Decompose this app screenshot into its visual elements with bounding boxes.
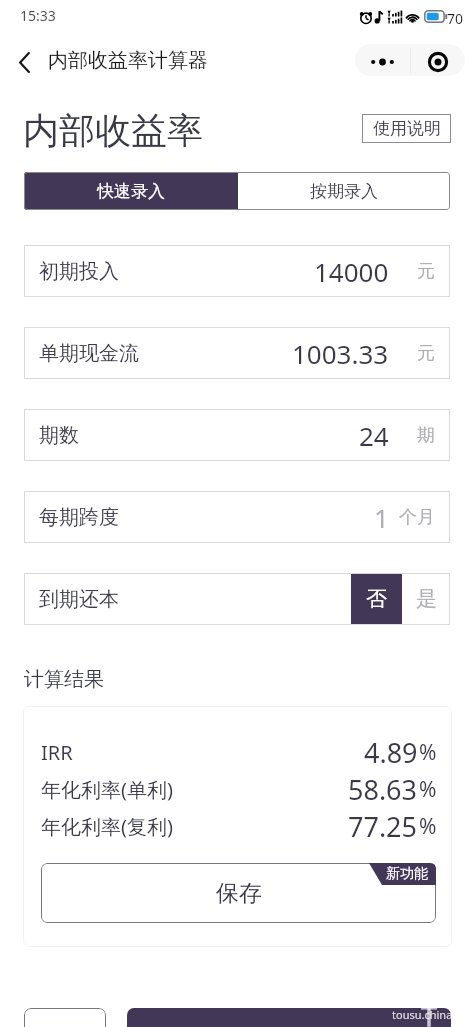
staticText: 元 (417, 260, 435, 283)
staticText: 元 (417, 342, 435, 365)
button[interactable]: 开始计算 (127, 1008, 451, 1027)
button[interactable]: 是 (402, 574, 450, 624)
staticText: 快速录入 (97, 181, 165, 202)
staticText: 1003.33 (292, 336, 389, 371)
button[interactable]: 功能菜单 (411, 44, 465, 76)
staticText: 70 (447, 9, 464, 28)
staticText: 77.25 (348, 808, 418, 844)
button[interactable]: 快速录入 (24, 172, 238, 210)
staticText: % (419, 775, 437, 804)
staticText: 年化利率(复利) (41, 813, 173, 840)
staticText: 年化利率(单利) (41, 776, 173, 803)
staticText: 期 (417, 424, 435, 447)
staticText: tousu.china.com (392, 1007, 474, 1022)
staticText: 单期现金流 (39, 341, 139, 366)
button[interactable]: 每期跨度 (24, 491, 450, 543)
staticText: % (419, 738, 437, 767)
button[interactable]: 保存 (41, 863, 436, 923)
staticText: 1 (374, 500, 389, 535)
staticText: 内部收益率 (23, 108, 203, 153)
staticText: 到期还本 (39, 587, 119, 612)
staticText: 24 (359, 418, 389, 453)
staticText: % (419, 812, 437, 841)
staticText: 期数 (39, 423, 79, 448)
staticText: 58.63 (348, 771, 418, 807)
staticText: 15:33 (20, 6, 56, 25)
button[interactable]: 期数 (24, 409, 450, 461)
staticText: 是 (416, 586, 437, 612)
button[interactable]: 更多 (355, 44, 410, 76)
staticText: 4.89 (364, 734, 418, 770)
button[interactable]: 重置 (24, 1008, 106, 1027)
button[interactable]: 返回 (4, 40, 44, 80)
staticText: 否 (366, 586, 387, 612)
staticText: 每期跨度 (39, 505, 119, 530)
staticText: IRR (41, 739, 73, 766)
staticText: 使用说明 (373, 118, 441, 139)
staticText: 个月 (399, 506, 435, 529)
staticText: 新功能 (386, 865, 428, 883)
staticText: 计算结果 (24, 667, 104, 692)
staticText: 内部收益率计算器 (48, 48, 208, 73)
staticText: 初期投入 (39, 259, 119, 284)
staticText: 14000 (314, 254, 389, 289)
button[interactable]: 初期投入 (24, 245, 450, 297)
button[interactable]: 单期现金流 (24, 327, 450, 379)
staticText: 保存 (216, 879, 262, 908)
staticText: 按期录入 (310, 181, 378, 202)
button[interactable]: 按期录入 (238, 172, 450, 210)
button[interactable]: 否 (351, 574, 402, 624)
button[interactable]: 使用说明 (362, 114, 451, 143)
